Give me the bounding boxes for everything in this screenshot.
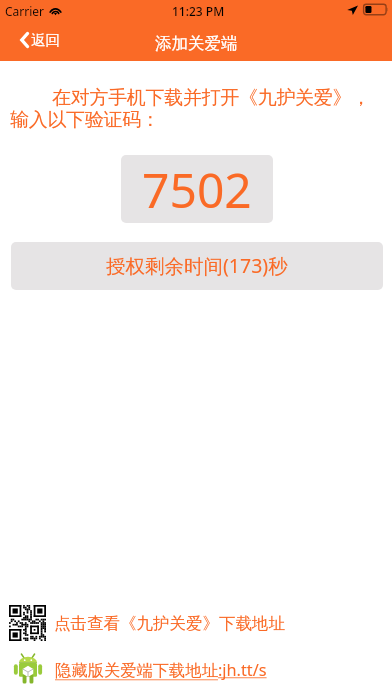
staticText: 11:23 PM [172,3,225,19]
staticText: 在对方手机下载并打开《九护关爱》， [10,84,370,110]
staticText: 7502 [142,157,252,222]
button[interactable]: 授权剩余时间(173)秒 [11,242,383,290]
staticText: 输入以下验证码： [10,108,160,132]
button[interactable]: 返回 [14,27,66,53]
other: Android download [13,653,43,687]
staticText: Carrier [5,3,45,19]
staticText: 添加关爱端 [155,33,238,54]
button[interactable]: QR code [9,601,291,645]
staticText: 授权剩余时间(173)秒 [106,252,288,279]
other: QR code [9,605,46,641]
button[interactable]: Android download [13,647,273,693]
staticText: 返回 [31,31,60,49]
staticText: 点击查看《九护关爱》下载地址 [54,613,285,634]
staticText: 隐藏版关爱端下载地址:jh.tt/s [55,659,267,681]
